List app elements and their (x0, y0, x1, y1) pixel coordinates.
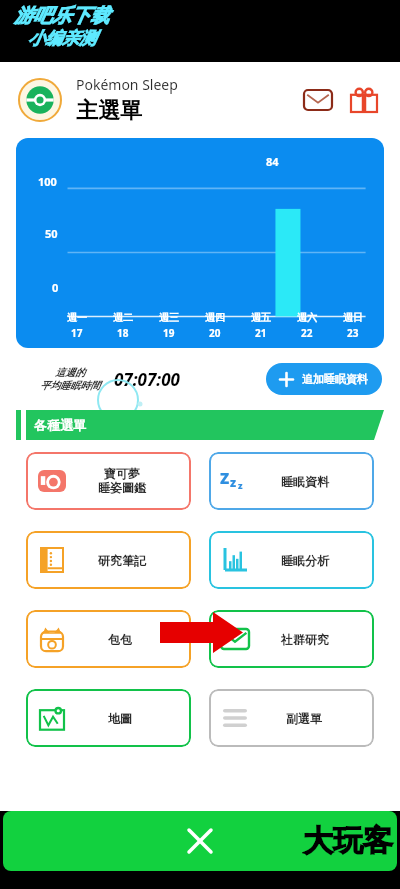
staticText: 週日 (343, 311, 363, 324)
staticText: 週六 (297, 311, 317, 324)
staticText: 20 (209, 326, 221, 340)
staticText: 小编亲测 (28, 28, 96, 49)
staticText: 週一 (67, 311, 87, 324)
staticText: 0 (52, 280, 59, 295)
staticText: 社群研究 (281, 632, 329, 647)
staticText: 各種選單 (34, 417, 86, 433)
staticText: 100 (38, 174, 57, 189)
staticText: 大玩客 (303, 822, 393, 860)
staticText: 這週的 (55, 366, 85, 379)
staticText: Z (220, 468, 230, 488)
staticText: 週三 (159, 311, 179, 324)
staticText: 84 (266, 154, 279, 169)
button[interactable]: 寶可夢 睡姿圖鑑 (26, 452, 191, 510)
staticText: 研究筆記 (98, 553, 146, 568)
button[interactable]: Close (3, 811, 397, 871)
staticText: 50 (45, 226, 58, 241)
staticText: 21 (255, 326, 267, 340)
button[interactable]: 地圖 (26, 689, 191, 747)
button[interactable]: 追加睡眠資料 (266, 363, 382, 395)
staticText: 週五 (251, 311, 271, 324)
staticText: 主選單 (76, 97, 142, 125)
staticText: z (238, 479, 243, 491)
staticText: 平均睡眠時間 (40, 379, 100, 392)
staticText: 週二 (113, 311, 133, 324)
button[interactable]: Gifts (346, 82, 382, 118)
staticText: 寶可夢 睡姿圖鑑 (98, 466, 146, 496)
staticText: 追加睡眠資料 (302, 372, 368, 386)
staticText: 17 (71, 326, 83, 340)
staticText: Pokémon Sleep (76, 75, 178, 94)
staticText: 週四 (205, 311, 225, 324)
staticText: 19 (163, 326, 175, 340)
button[interactable]: 包包 (26, 610, 191, 668)
staticText: z (230, 474, 237, 490)
staticText: 睡眠資料 (281, 474, 329, 489)
staticText: 23 (347, 326, 359, 340)
button[interactable]: Z (209, 452, 374, 510)
button[interactable]: Mail (300, 82, 336, 118)
staticText: 包包 (108, 632, 132, 647)
button[interactable]: 副選單 (209, 689, 374, 747)
staticText: 18 (117, 326, 129, 340)
staticText: 游吧乐下载 (14, 4, 109, 28)
staticText: 22 (301, 326, 313, 340)
button[interactable]: 睡眠分析 (209, 531, 374, 589)
staticText: 地圖 (108, 711, 132, 726)
staticText: 副選單 (286, 711, 322, 726)
staticText: 睡眠分析 (281, 553, 329, 568)
button[interactable]: 社群研究 (209, 610, 374, 668)
button[interactable]: 研究筆記 (26, 531, 191, 589)
staticText: 07:07:00 (114, 368, 180, 391)
